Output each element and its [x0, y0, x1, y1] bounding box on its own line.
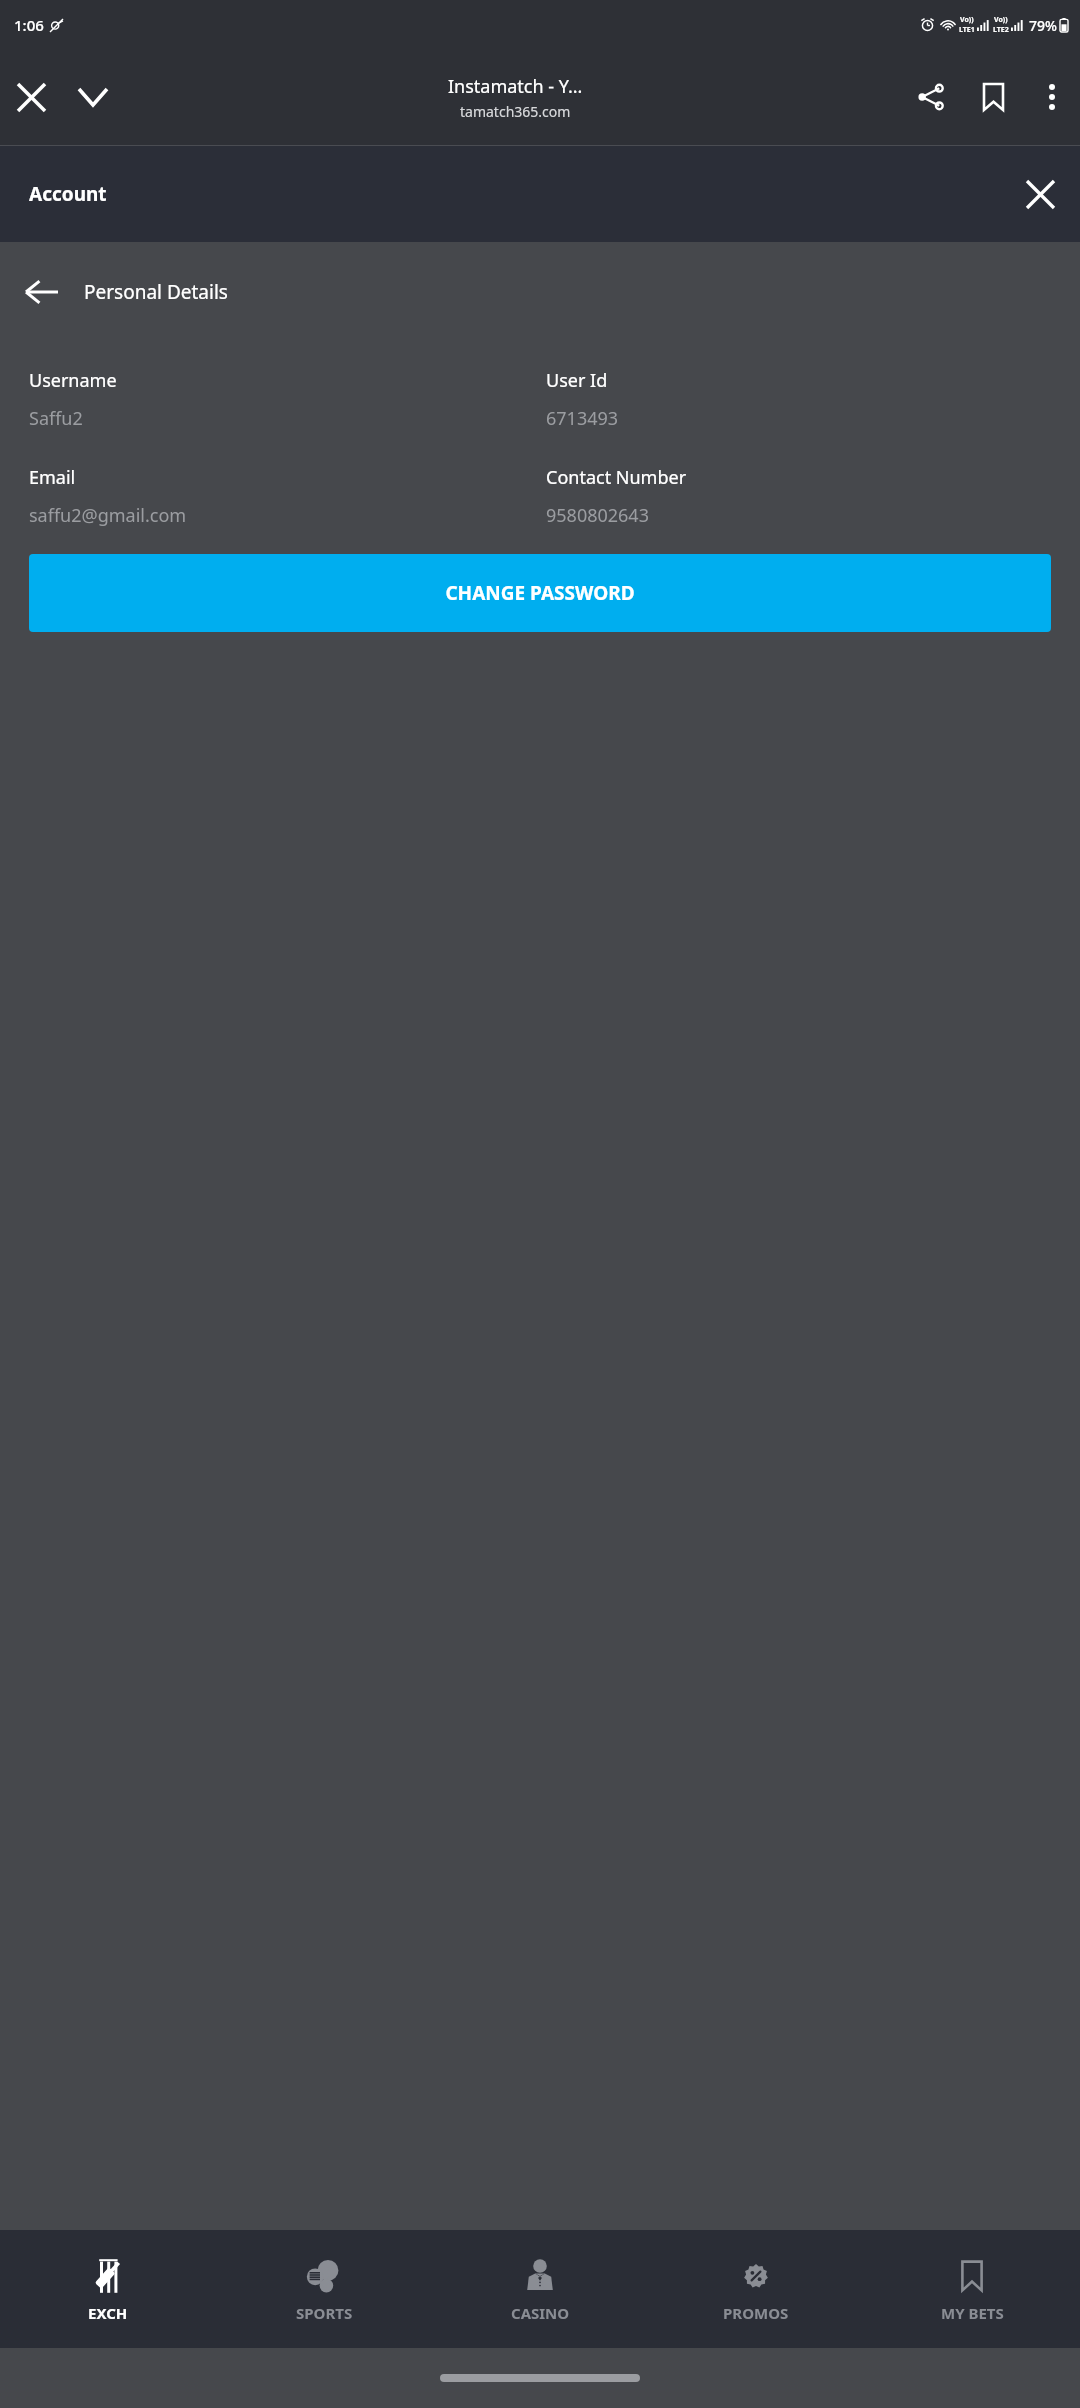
staticText: 6713493: [546, 406, 619, 431]
staticText: CHANGE PASSWORD: [445, 580, 635, 606]
staticText: tamatch365.com: [460, 102, 571, 121]
staticText: Saffu2: [29, 406, 83, 431]
staticText: CASINO: [511, 2303, 570, 2323]
button[interactable]: CHANGE PASSWORD: [29, 554, 1051, 632]
staticText: User Id: [546, 368, 608, 393]
staticText: EXCH: [88, 2303, 128, 2323]
staticText: MY BETS: [941, 2303, 1004, 2323]
button[interactable]: More options: [1024, 69, 1080, 125]
staticText: LTE2: [993, 25, 1009, 35]
staticText: Username: [29, 368, 117, 393]
staticText: LTE1: [959, 25, 975, 35]
button[interactable]: Bookmark: [962, 66, 1024, 128]
button[interactable]: Close: [0, 66, 62, 128]
staticText: saffu2@gmail.com: [29, 503, 187, 528]
staticText: Email: [29, 465, 76, 490]
staticText: Contact Number: [546, 465, 687, 490]
staticText: Vo)): [994, 15, 1008, 25]
button[interactable]: Back: [6, 256, 78, 328]
button[interactable]: SPORTS: [216, 2230, 432, 2348]
staticText: Vo)): [960, 15, 974, 25]
staticText: Personal Details: [84, 279, 228, 305]
staticText: PROMOS: [723, 2303, 789, 2323]
staticText: SPORTS: [296, 2303, 353, 2323]
staticText: Account: [29, 181, 107, 207]
button[interactable]: EXCH: [0, 2230, 216, 2348]
button[interactable]: MY BETS: [864, 2230, 1080, 2348]
button[interactable]: PROMOS: [648, 2230, 864, 2348]
button[interactable]: Share: [900, 66, 962, 128]
staticText: Instamatch - Y...: [448, 74, 583, 99]
staticText: 79%: [1029, 16, 1057, 35]
staticText: 1:06: [14, 15, 44, 35]
staticText: 9580802643: [546, 503, 649, 528]
button[interactable]: Expand: [62, 66, 124, 128]
button[interactable]: CASINO: [432, 2230, 648, 2348]
button[interactable]: Close account panel: [1012, 166, 1068, 222]
